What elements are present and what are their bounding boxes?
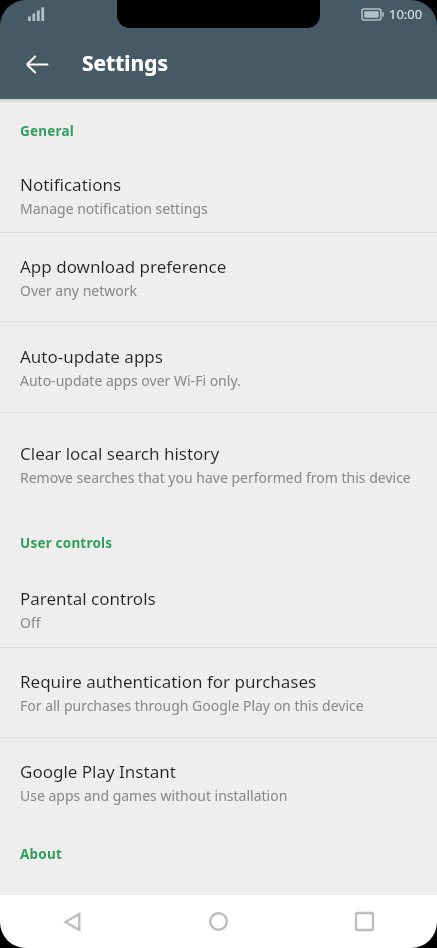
staticText: Manage notification settings: [20, 199, 208, 218]
staticText: Over any network: [20, 281, 137, 300]
staticText: User controls: [20, 534, 113, 552]
staticText: Remove searches that you have performed …: [20, 468, 411, 487]
staticText: Use apps and games without installation: [20, 786, 288, 805]
staticText: For all purchases through Google Play on…: [20, 696, 364, 715]
button[interactable]: Parental controls: [0, 571, 437, 647]
button[interactable]: Recent apps: [291, 895, 437, 948]
staticText: Off: [20, 613, 41, 632]
staticText: Clear local search history: [20, 442, 220, 465]
button[interactable]: Auto-update apps: [0, 322, 437, 412]
staticText: About: [20, 845, 62, 863]
staticText: Google Play Instant: [20, 760, 176, 783]
staticText: General: [20, 122, 74, 140]
button[interactable]: Clear local search history: [0, 413, 437, 515]
staticText: Require authentication for purchases: [20, 670, 317, 693]
button[interactable]: App download preference: [0, 233, 437, 321]
staticText: 10:00: [389, 5, 423, 23]
button[interactable]: Require authentication for purchases: [0, 648, 437, 737]
staticText: Settings: [82, 49, 169, 78]
button[interactable]: Back: [0, 895, 145, 948]
staticText: Notifications: [20, 173, 122, 196]
button[interactable]: Home: [145, 895, 291, 948]
staticText: Parental controls: [20, 587, 156, 610]
staticText: Auto-update apps over Wi-Fi only.: [20, 371, 241, 390]
button[interactable]: Google Play Instant: [0, 738, 437, 826]
staticText: App download preference: [20, 255, 227, 278]
staticText: Auto-update apps: [20, 345, 163, 368]
button[interactable]: Notifications: [0, 158, 437, 232]
button[interactable]: Back: [14, 41, 60, 87]
